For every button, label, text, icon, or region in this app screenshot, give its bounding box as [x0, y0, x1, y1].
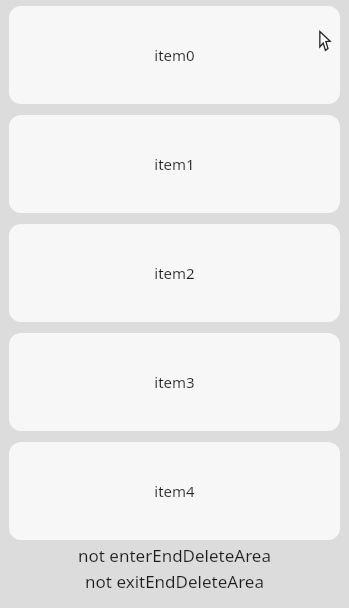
staticText: item2	[154, 263, 195, 283]
button[interactable]: item4	[9, 442, 340, 540]
staticText: not exitEndDeleteArea	[85, 570, 264, 593]
staticText: not enterEndDeleteArea	[78, 544, 271, 567]
staticText: item1	[154, 154, 195, 174]
button[interactable]: item3	[9, 333, 340, 431]
staticText: item4	[154, 481, 195, 501]
button[interactable]: item2	[9, 224, 340, 322]
button[interactable]: item1	[9, 115, 340, 213]
other: Pointer	[319, 31, 333, 51]
staticText: item3	[154, 372, 195, 392]
button[interactable]: item0	[9, 6, 340, 104]
staticText: item0	[154, 45, 195, 65]
